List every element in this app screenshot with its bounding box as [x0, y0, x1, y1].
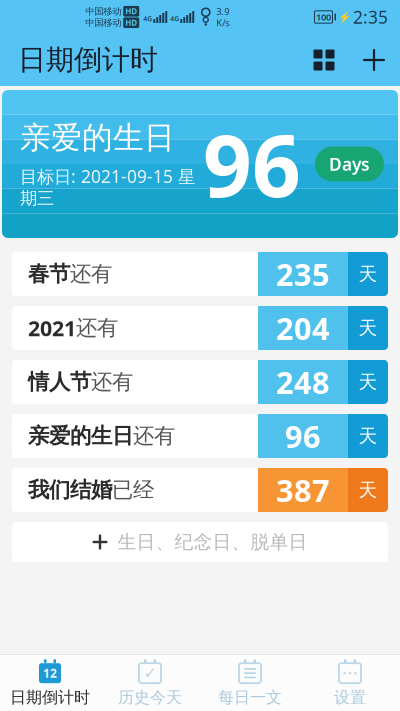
- button[interactable]: 设置: [300, 655, 400, 711]
- staticText: HD: [125, 6, 137, 17]
- button[interactable]: 春节: [0, 252, 400, 296]
- staticText: HD: [125, 17, 137, 28]
- staticText: 96: [203, 107, 301, 221]
- button[interactable]: 每日一文: [200, 655, 300, 711]
- staticText: 2:35: [353, 5, 388, 28]
- staticText: 天: [358, 424, 377, 447]
- staticText: 96: [285, 416, 321, 456]
- staticText: 亲爱的生日: [28, 423, 133, 449]
- staticText: 中国移动: [85, 17, 121, 28]
- staticText: 还有: [70, 261, 112, 287]
- staticText: 387: [276, 470, 330, 510]
- staticText: 235: [276, 254, 330, 294]
- button[interactable]: 2021: [0, 306, 400, 350]
- staticText: 情人节: [28, 369, 91, 395]
- staticText: 还有: [91, 369, 133, 395]
- button[interactable]: 生日、纪念日、脱单日: [0, 522, 400, 562]
- button[interactable]: View layout: [300, 37, 348, 83]
- staticText: 天: [358, 370, 377, 393]
- staticText: 亲爱的生日: [20, 119, 175, 157]
- staticText: ⚡: [338, 11, 351, 23]
- staticText: 天: [358, 262, 377, 285]
- button[interactable]: 亲爱的生日: [0, 414, 400, 458]
- staticText: 还有: [133, 423, 175, 449]
- staticText: 天: [358, 478, 377, 501]
- button[interactable]: 亲爱的生日: [0, 90, 400, 238]
- staticText: 目标日: 2021-09-15 星期三: [20, 165, 195, 209]
- staticText: 248: [276, 362, 330, 402]
- staticText: 中国移动: [85, 5, 121, 17]
- staticText: 4G: [170, 14, 179, 23]
- staticText: 2021: [28, 314, 76, 342]
- staticText: 设置: [334, 688, 366, 707]
- staticText: 已经: [112, 477, 154, 503]
- button[interactable]: 情人节: [0, 360, 400, 404]
- staticText: 我们结婚: [28, 477, 112, 503]
- staticText: 12: [43, 665, 57, 681]
- staticText: ✓: [143, 664, 156, 682]
- button[interactable]: ✓: [100, 655, 200, 711]
- staticText: 3.9: [216, 5, 229, 17]
- staticText: 204: [276, 308, 330, 348]
- button[interactable]: 12: [0, 655, 100, 711]
- staticText: 生日、纪念日、脱单日: [117, 530, 307, 553]
- staticText: K/s: [216, 16, 229, 29]
- staticText: 还有: [76, 315, 118, 341]
- staticText: 每日一文: [218, 688, 282, 707]
- staticText: 4G: [143, 14, 152, 23]
- staticText: 日期倒计时: [10, 688, 90, 707]
- button[interactable]: 我们结婚: [0, 468, 400, 512]
- staticText: 历史今天: [118, 688, 182, 707]
- staticText: 春节: [28, 261, 70, 287]
- staticText: Days: [329, 152, 370, 175]
- staticText: 天: [358, 316, 377, 339]
- staticText: 100: [316, 11, 331, 23]
- button[interactable]: Add countdown: [348, 37, 400, 83]
- staticText: 日期倒计时: [18, 43, 158, 77]
